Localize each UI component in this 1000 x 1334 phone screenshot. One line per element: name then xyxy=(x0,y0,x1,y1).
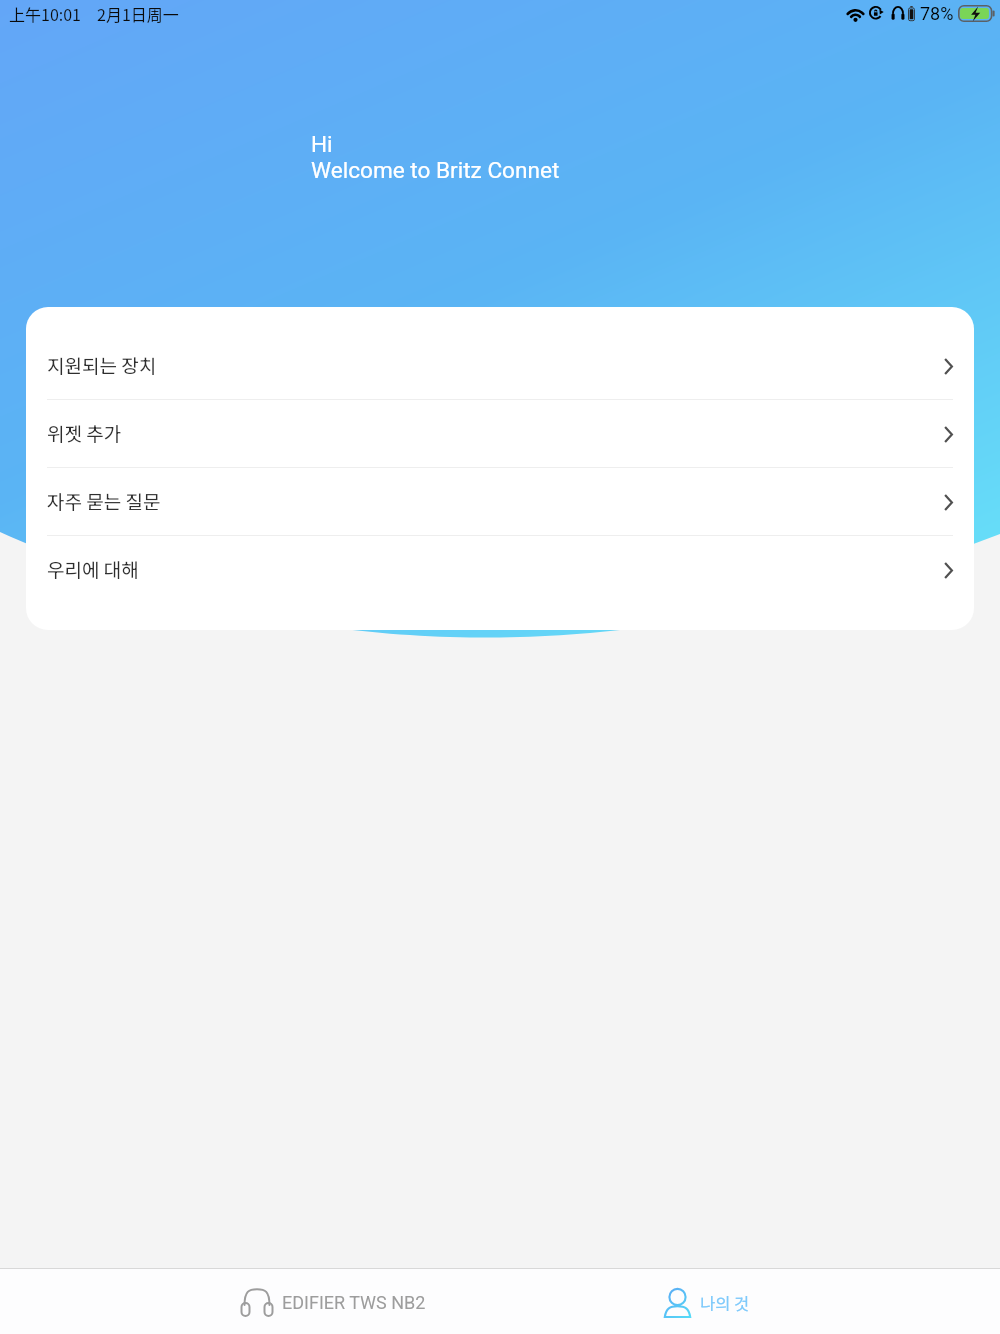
staticText: 우리에 대해 xyxy=(47,555,139,583)
button[interactable]: Mine xyxy=(664,1270,750,1334)
staticText: 2月1日周一 xyxy=(97,2,179,25)
button[interactable]: 자주 묻는 질문 xyxy=(26,468,974,535)
staticText: 上午10:01 xyxy=(9,2,81,25)
button[interactable]: 위젯 추가 xyxy=(26,400,974,467)
button[interactable]: 지원되는 장치 xyxy=(26,332,974,399)
other: Mine xyxy=(664,1288,691,1318)
staticText: Hi Welcome to Britz Connet xyxy=(311,131,560,183)
staticText: 자주 묻는 질문 xyxy=(47,487,161,515)
staticText: 나의 것 xyxy=(700,1291,750,1315)
other: Device xyxy=(241,1288,273,1317)
staticText: EDIFIER TWS NB2 xyxy=(282,1292,426,1313)
staticText: 위젯 추가 xyxy=(47,419,122,447)
button[interactable]: 우리에 대해 xyxy=(26,536,974,603)
staticText: 지원되는 장치 xyxy=(47,351,157,379)
button[interactable]: Device xyxy=(241,1270,426,1334)
staticText: 78% xyxy=(920,3,954,24)
